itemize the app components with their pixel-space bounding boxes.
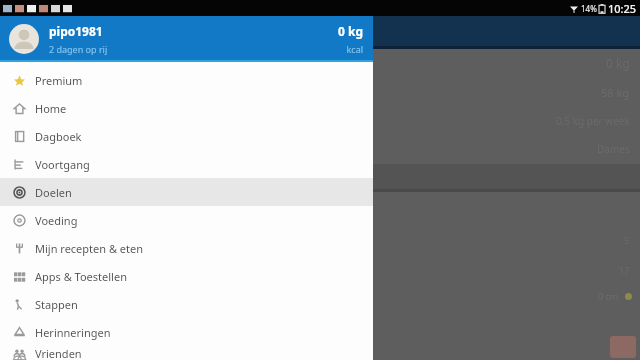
button[interactable]: Herinneringen [0, 318, 373, 346]
button[interactable]: Doelen [0, 178, 373, 206]
staticText: 10:25 [608, 1, 637, 16]
button[interactable]: Dagboek [0, 122, 373, 150]
button[interactable]: Vrienden [0, 346, 373, 360]
button[interactable]: Mijn recepten & eten [0, 234, 373, 262]
staticText: Voeding [35, 213, 78, 228]
staticText: 14% [581, 3, 597, 14]
staticText: 0 kg [337, 23, 363, 39]
staticText: Home [35, 101, 67, 116]
staticText: Dames [597, 142, 630, 156]
staticText: Mijn recepten & eten [35, 241, 144, 256]
staticText: Vrienden [35, 346, 82, 360]
button[interactable]: Premium [0, 66, 373, 94]
staticText: Voortgang [35, 157, 90, 172]
staticText: Doelen [35, 185, 72, 200]
staticText: 5 [624, 234, 630, 246]
button[interactable]: Voeding [0, 206, 373, 234]
button[interactable]: Home [0, 94, 373, 122]
staticText: kcal [346, 43, 363, 55]
staticText: Premium [35, 73, 83, 88]
staticText: Herinneringen [35, 325, 111, 340]
button[interactable]: pipo1981 [0, 16, 373, 62]
staticText: pipo1981 [49, 23, 103, 39]
staticText: 0,5 kg per week [556, 114, 630, 128]
staticText: 0 kg [606, 55, 630, 71]
staticText: 0 cm [598, 290, 619, 302]
staticText: Apps & Toestellen [35, 269, 127, 284]
button[interactable]: Apps & Toestellen [0, 262, 373, 290]
staticText: 2 dagen op rij [49, 43, 108, 55]
button[interactable]: Voortgang [0, 150, 373, 178]
staticText: Stappen [35, 297, 78, 312]
staticText: Dagboek [35, 129, 82, 144]
staticText: 58 kg [601, 85, 630, 100]
button[interactable]: Stappen [0, 290, 373, 318]
